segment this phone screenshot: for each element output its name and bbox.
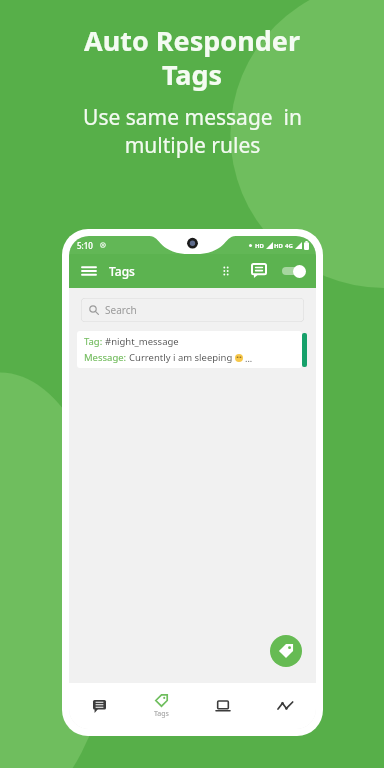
button[interactable]: Tags xyxy=(130,683,192,729)
staticText: Tags xyxy=(154,709,169,719)
staticText: Auto Responder Tags xyxy=(84,22,300,93)
button[interactable]: Navigation item xyxy=(192,683,254,729)
button[interactable]: Navigation item xyxy=(69,683,130,729)
button[interactable]: Tag: xyxy=(77,331,308,368)
staticText: 4G xyxy=(285,242,293,250)
staticText: Currently i am sleeping xyxy=(129,351,233,364)
button[interactable]: Navigation item xyxy=(254,683,316,729)
staticText: HD xyxy=(274,242,283,250)
staticText: Message: xyxy=(84,351,129,364)
button[interactable]: Enable tags xyxy=(280,263,306,279)
staticText: Use same message in multiple rules xyxy=(83,103,302,159)
button[interactable]: Open navigation menu xyxy=(79,261,99,281)
staticText: HD xyxy=(255,242,264,250)
staticText: 5:10 xyxy=(77,240,93,251)
button[interactable]: Search xyxy=(81,298,304,322)
staticText: #night_message xyxy=(105,335,179,348)
button[interactable]: Add tag xyxy=(270,635,302,667)
button[interactable]: Messages xyxy=(248,260,270,282)
staticText: ... xyxy=(245,352,253,364)
button[interactable]: Reorder xyxy=(216,261,236,281)
staticText: Search xyxy=(105,303,137,317)
staticText: Tags xyxy=(109,263,135,279)
staticText: Tag: xyxy=(84,335,105,348)
